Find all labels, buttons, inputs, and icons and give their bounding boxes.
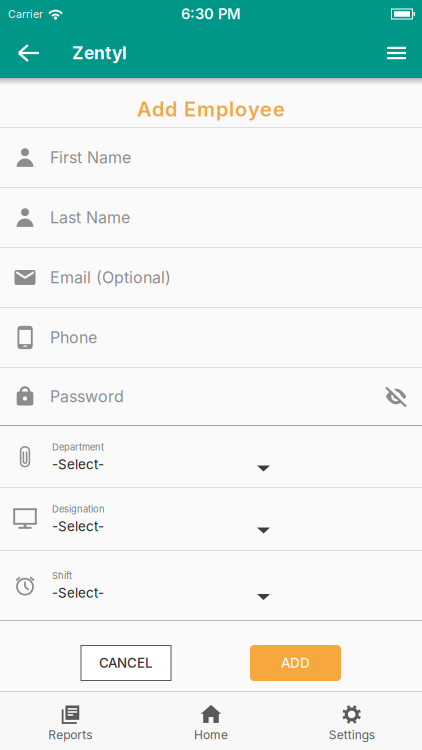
staticText: Shift [52, 570, 72, 581]
staticText: Designation [52, 504, 105, 515]
staticText: -Select- [52, 457, 104, 472]
button[interactable]: Home [141, 694, 281, 748]
staticText: 6:30 PM [181, 5, 241, 23]
staticText: Email (Optional) [50, 268, 171, 287]
button[interactable]: Menu [387, 47, 422, 59]
button[interactable]: -Select- [52, 585, 270, 601]
button[interactable]: Settings [281, 694, 422, 748]
button[interactable]: Show password [384, 386, 422, 406]
button[interactable]: CANCEL [81, 645, 171, 680]
staticText: Reports [48, 728, 92, 742]
staticText: -Select- [52, 585, 104, 601]
button[interactable]: -Select- [52, 457, 270, 472]
staticText: -Select- [52, 519, 104, 534]
staticText: Department [52, 442, 104, 453]
button[interactable]: Reports [0, 694, 141, 748]
staticText: Home [194, 728, 228, 742]
staticText: Carrier [8, 8, 43, 20]
button[interactable]: -Select- [52, 519, 270, 534]
staticText: CANCEL [99, 655, 153, 671]
staticText: Add Employee [137, 97, 285, 121]
staticText: Last Name [50, 208, 130, 227]
staticText: First Name [50, 148, 131, 167]
button[interactable]: Back [0, 44, 72, 61]
staticText: Phone [50, 328, 97, 347]
staticText: Settings [329, 728, 375, 742]
staticText: Password [50, 387, 124, 406]
staticText: ADD [281, 655, 310, 671]
button[interactable]: ADD [250, 645, 341, 681]
staticText: Zentyl [72, 43, 127, 63]
